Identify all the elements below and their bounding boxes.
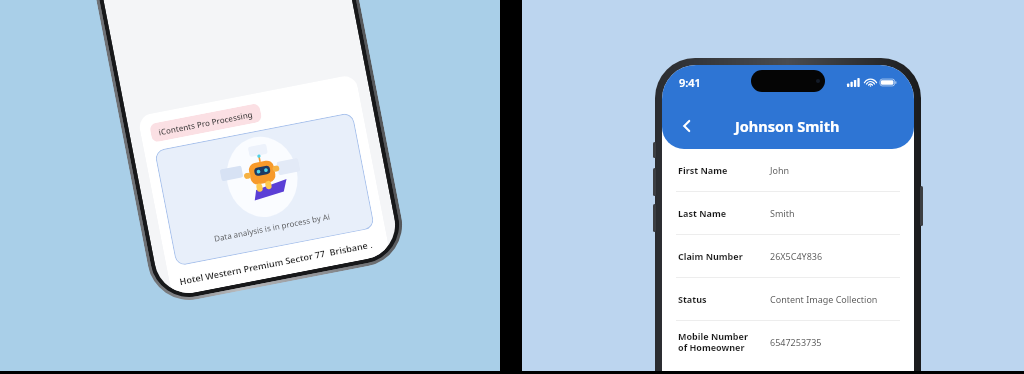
button[interactable]: Claim Number bbox=[662, 235, 914, 277]
staticText: 9:41 bbox=[679, 75, 701, 90]
staticText: iContents Pro Processing bbox=[158, 108, 254, 137]
staticText: Claim Number bbox=[678, 250, 770, 262]
staticText: Hotel Western Premium Sector 77 Brisbane… bbox=[178, 238, 374, 285]
staticText: Data analysis is in process by Ai bbox=[213, 210, 331, 244]
button[interactable]: iContents Pro Processing bbox=[149, 103, 263, 143]
staticText: Content Image Collection bbox=[770, 293, 878, 305]
staticText: 26X5C4Y836 bbox=[770, 250, 823, 262]
staticText: Johnson Smith bbox=[735, 116, 840, 136]
button[interactable]: Back bbox=[674, 113, 700, 139]
staticText: John bbox=[770, 164, 790, 176]
staticText: Status bbox=[678, 293, 770, 305]
button[interactable]: Last Name bbox=[662, 192, 914, 234]
button[interactable]: Status bbox=[662, 278, 914, 320]
staticText: Smith bbox=[770, 207, 795, 219]
button[interactable]: First Name bbox=[662, 149, 914, 191]
staticText: Last Name bbox=[678, 207, 770, 219]
staticText: First Name bbox=[678, 164, 770, 176]
staticText: Mobile Number of Homeowner bbox=[678, 330, 770, 354]
button[interactable]: Mobile Number of Homeowner bbox=[662, 321, 914, 363]
staticText: 6547253735 bbox=[770, 336, 822, 348]
